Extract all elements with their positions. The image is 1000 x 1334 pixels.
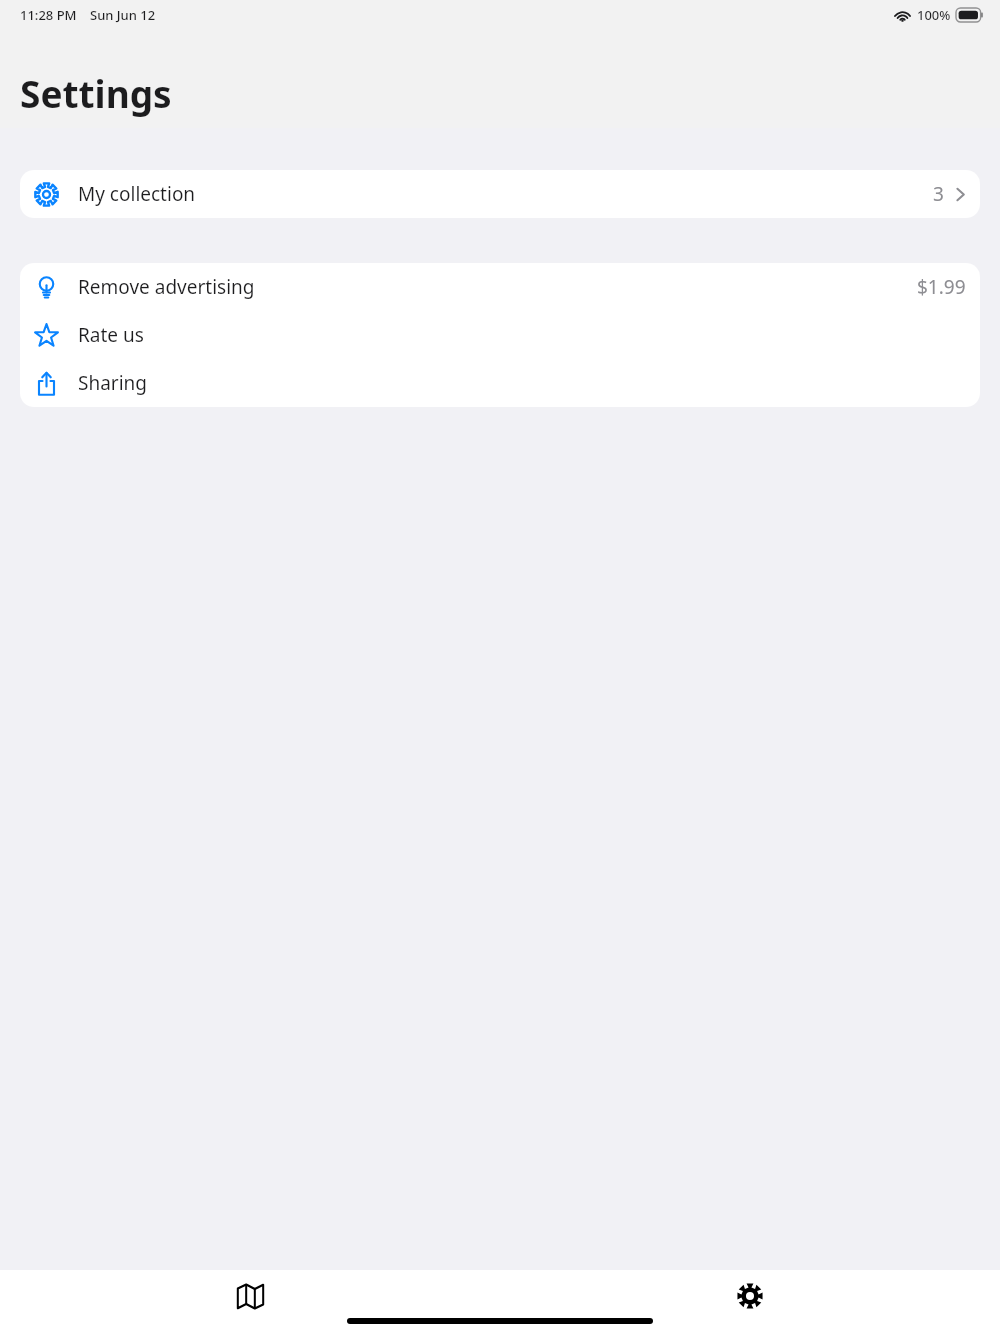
- button[interactable]: Settings: [500, 1270, 1000, 1334]
- staticText: 11:28 PM: [20, 6, 77, 24]
- button[interactable]: Rate us: [20, 311, 980, 359]
- staticText: Sun Jun 12: [90, 6, 156, 24]
- staticText: Remove advertising: [78, 274, 255, 300]
- staticText: 3: [933, 181, 944, 207]
- button[interactable]: My collection: [20, 170, 980, 218]
- staticText: 100%: [917, 6, 951, 24]
- button[interactable]: Sharing: [20, 359, 980, 407]
- staticText: Sharing: [78, 370, 148, 396]
- staticText: Settings: [20, 68, 172, 118]
- staticText: My collection: [78, 181, 196, 207]
- staticText: Rate us: [78, 322, 144, 348]
- button[interactable]: Map: [0, 1270, 500, 1334]
- button[interactable]: Remove advertising: [20, 263, 980, 311]
- staticText: $1.99: [917, 274, 966, 300]
